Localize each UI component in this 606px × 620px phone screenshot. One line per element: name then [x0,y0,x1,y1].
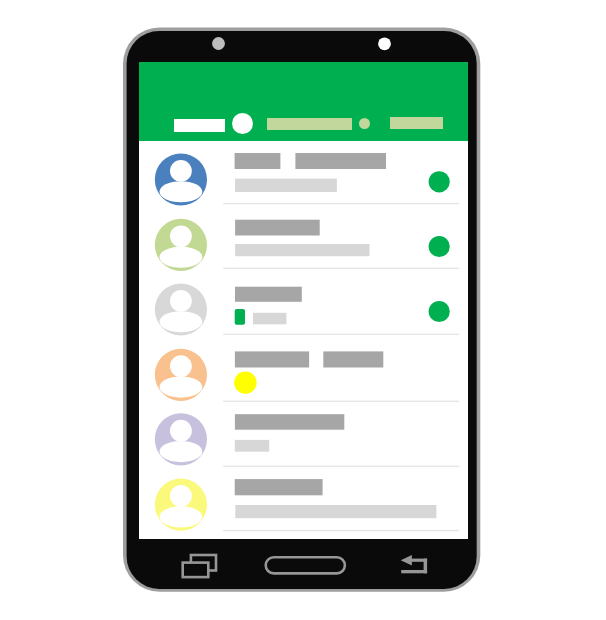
button[interactable]: Home [262,551,349,581]
button[interactable]: Conversation 1 [139,141,468,204]
button[interactable]: Back [396,551,432,581]
button[interactable]: Conversation 5 [139,402,468,467]
button[interactable]: Account [232,113,253,134]
button[interactable]: Conversation 4 [139,335,468,402]
button[interactable]: Recent apps [180,551,220,581]
button[interactable]: Conversation 6 [139,467,468,531]
button[interactable]: Conversation 3 [139,269,468,335]
button[interactable]: Conversation 2 [139,204,468,269]
button[interactable]: More options [359,118,370,129]
